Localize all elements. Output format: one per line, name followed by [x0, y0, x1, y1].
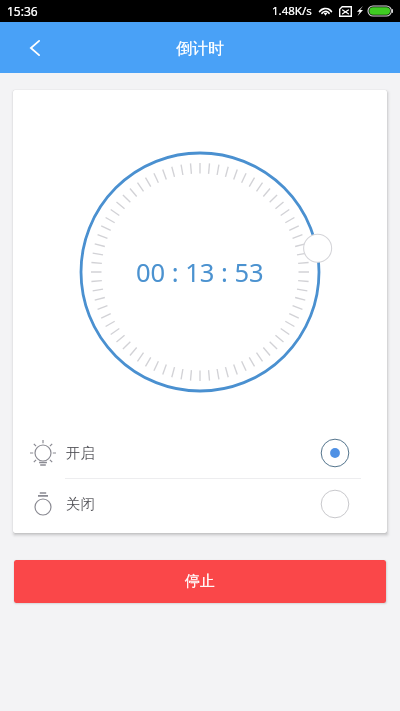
button[interactable]: Back: [13, 26, 57, 70]
staticText: 00 : 13 : 53: [136, 255, 264, 290]
button[interactable]: 关闭: [13, 479, 387, 529]
button[interactable]: Countdown dial 00:13:53: [66, 138, 334, 406]
staticText: 1.48K/s: [272, 3, 312, 19]
button[interactable]: 停止: [14, 560, 386, 603]
staticText: 关闭: [66, 495, 95, 513]
staticText: 15:36: [7, 3, 38, 19]
staticText: 开启: [66, 444, 95, 462]
staticText: 倒计时: [176, 39, 224, 59]
staticText: 停止: [185, 572, 215, 591]
button[interactable]: 开启: [13, 428, 387, 478]
